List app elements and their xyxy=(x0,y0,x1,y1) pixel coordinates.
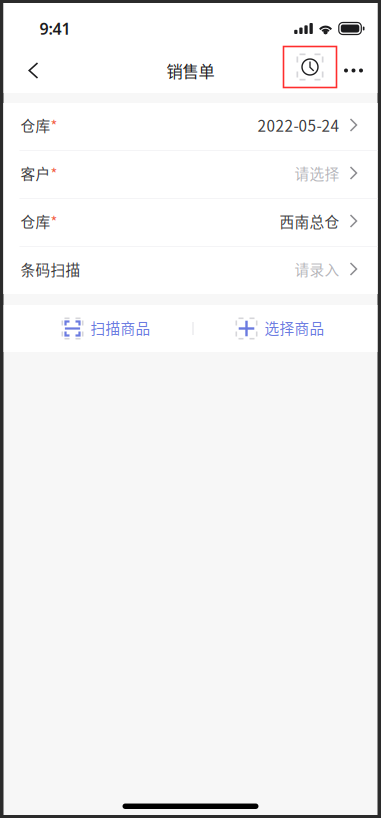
staticText: 销售单 xyxy=(166,59,214,82)
button[interactable]: Back xyxy=(11,48,55,92)
button[interactable]: 条码扫描 xyxy=(3,247,377,294)
staticText: 西南总仓 xyxy=(279,210,339,232)
button[interactable]: 选择商品 xyxy=(235,305,324,352)
staticText: 仓库 xyxy=(20,114,50,136)
staticText: 客户 xyxy=(20,162,50,184)
staticText: 仓库 xyxy=(20,210,50,232)
button[interactable]: 客户 xyxy=(3,151,377,198)
staticText: 条码扫描 xyxy=(20,258,80,280)
staticText: 请录入 xyxy=(294,258,339,280)
staticText: * xyxy=(50,162,57,184)
button[interactable]: 仓库 xyxy=(3,103,377,150)
button[interactable]: 仓库 xyxy=(3,199,377,246)
staticText: * xyxy=(50,114,57,136)
staticText: 扫描商品 xyxy=(90,317,150,338)
button[interactable]: More xyxy=(336,48,370,92)
staticText: 选择商品 xyxy=(264,317,324,338)
button[interactable]: History xyxy=(283,46,336,94)
staticText: 9:41 xyxy=(39,18,70,39)
staticText: 请选择 xyxy=(294,162,339,184)
button[interactable]: 扫描商品 xyxy=(61,305,150,352)
staticText: * xyxy=(50,210,57,232)
staticText: 2022-05-24 xyxy=(257,114,339,136)
